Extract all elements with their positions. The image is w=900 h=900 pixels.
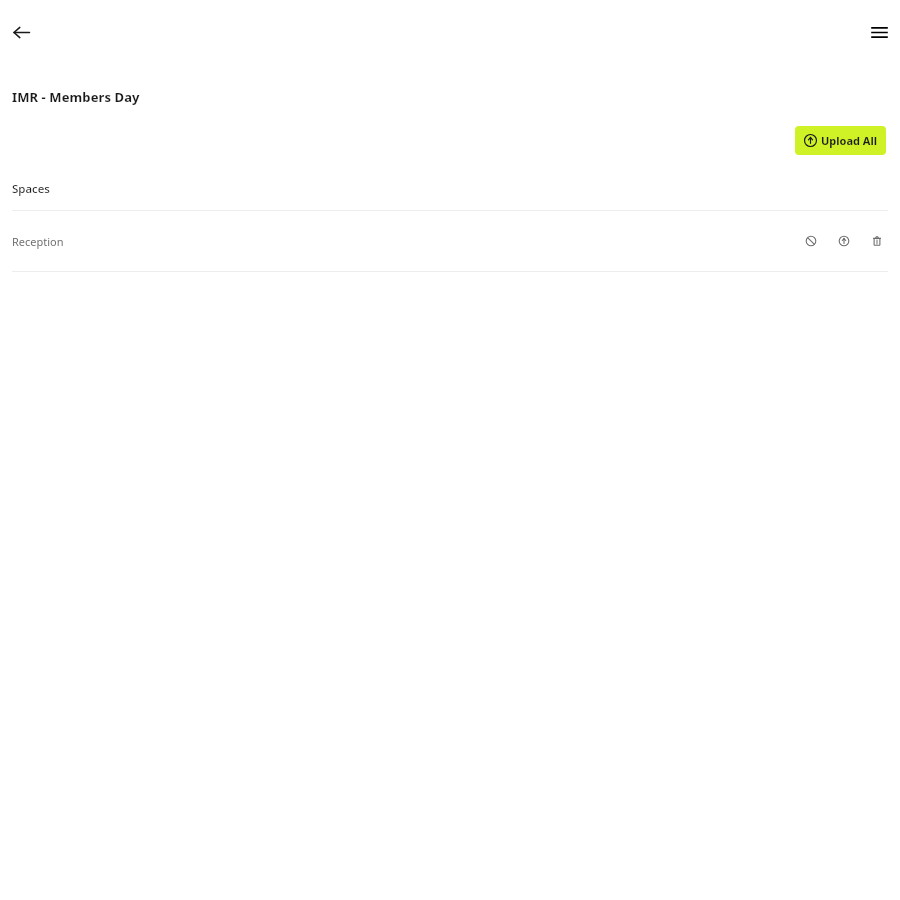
button[interactable]: Menu	[864, 17, 894, 47]
button[interactable]: Upload All	[795, 126, 886, 155]
button[interactable]: Delete	[866, 230, 888, 252]
button[interactable]: Upload	[833, 230, 855, 252]
staticText: Spaces	[12, 181, 50, 197]
staticText: Reception	[12, 234, 64, 249]
button[interactable]: Reception	[0, 211, 900, 271]
button[interactable]: Back	[6, 17, 36, 47]
button[interactable]: Block	[800, 230, 822, 252]
staticText: IMR - Members Day	[12, 88, 140, 106]
staticText: Upload All	[821, 133, 877, 148]
